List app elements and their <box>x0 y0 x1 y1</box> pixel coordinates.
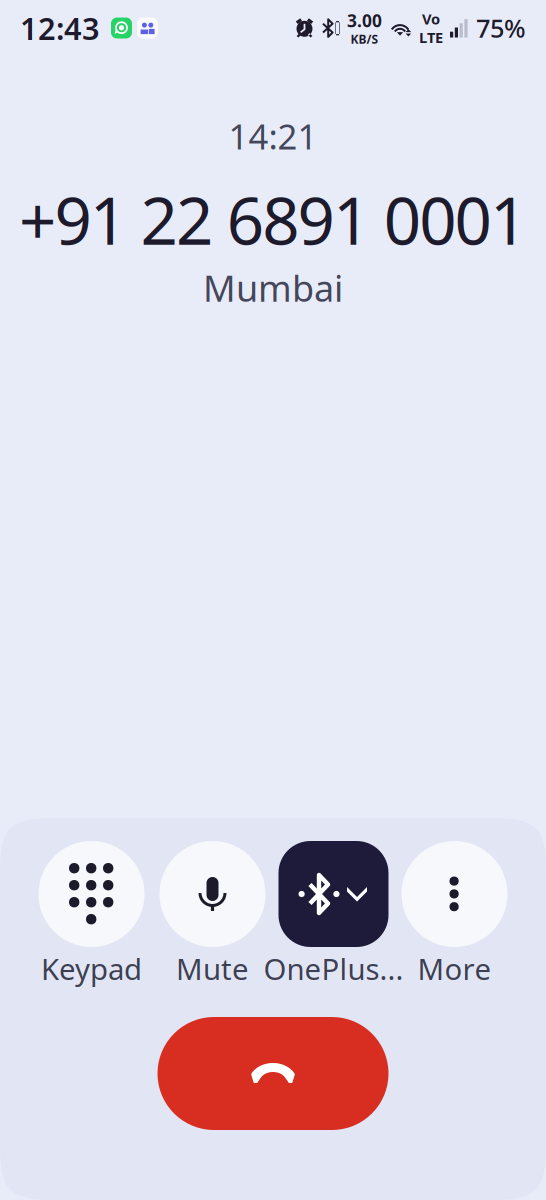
staticText: Mumbai <box>203 264 343 312</box>
staticText: +91 22 6891 0001 <box>19 176 527 263</box>
staticText: 3.00 <box>347 9 382 32</box>
button[interactable]: OnePlus... <box>273 841 394 981</box>
staticText: KB/S <box>350 31 378 47</box>
staticText: 14:21 <box>228 113 317 159</box>
staticText: 12:43 <box>20 8 100 48</box>
staticText: More <box>417 949 491 988</box>
staticText: 75% <box>476 11 526 45</box>
button[interactable]: Mute <box>152 841 273 981</box>
staticText: Vo <box>422 9 440 28</box>
staticText: Mute <box>176 949 249 988</box>
staticText: Keypad <box>41 949 142 988</box>
staticText: OnePlus... <box>263 949 403 988</box>
staticText: LTE <box>419 27 443 47</box>
button[interactable]: More <box>394 841 515 981</box>
button[interactable]: End call <box>157 1017 388 1130</box>
button[interactable]: Keypad <box>31 841 152 981</box>
